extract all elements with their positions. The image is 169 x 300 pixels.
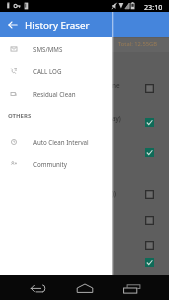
staticText: CALL LOG [33, 67, 62, 75]
staticText: Community [33, 160, 67, 168]
staticText: ay) [112, 114, 121, 123]
button[interactable]: Community [0, 155, 112, 173]
staticText: 23:10 [144, 2, 163, 12]
button[interactable]: Toggle item [145, 118, 154, 127]
staticText: Auto Clean Interval [33, 138, 89, 146]
staticText: History Eraser [25, 19, 90, 32]
button[interactable]: Toggle item [145, 258, 154, 267]
staticText: Total: 12.55GB [118, 40, 158, 48]
button[interactable]: Navigate up [0, 12, 25, 37]
staticText: SMS/MMS [33, 45, 63, 53]
button[interactable]: Toggle item [145, 148, 154, 157]
staticText: Residual Clean [33, 90, 76, 98]
button[interactable]: Auto Clean Interval [0, 133, 112, 151]
button[interactable]: CALL LOG [0, 62, 112, 80]
button[interactable]: Toggle item [145, 84, 154, 93]
button[interactable]: Residual Clean [0, 85, 112, 103]
staticText: ne [112, 81, 120, 90]
button[interactable]: Recent apps [113, 275, 169, 300]
button[interactable]: Toggle item [145, 241, 154, 250]
staticText: OTHERS [8, 112, 32, 120]
button[interactable]: SMS/MMS [0, 40, 112, 58]
button[interactable]: Back [0, 275, 57, 300]
button[interactable]: Toggle item [145, 216, 154, 225]
staticText: )) [112, 189, 116, 198]
button[interactable]: Home [57, 275, 113, 300]
button[interactable]: Toggle item [145, 190, 154, 199]
